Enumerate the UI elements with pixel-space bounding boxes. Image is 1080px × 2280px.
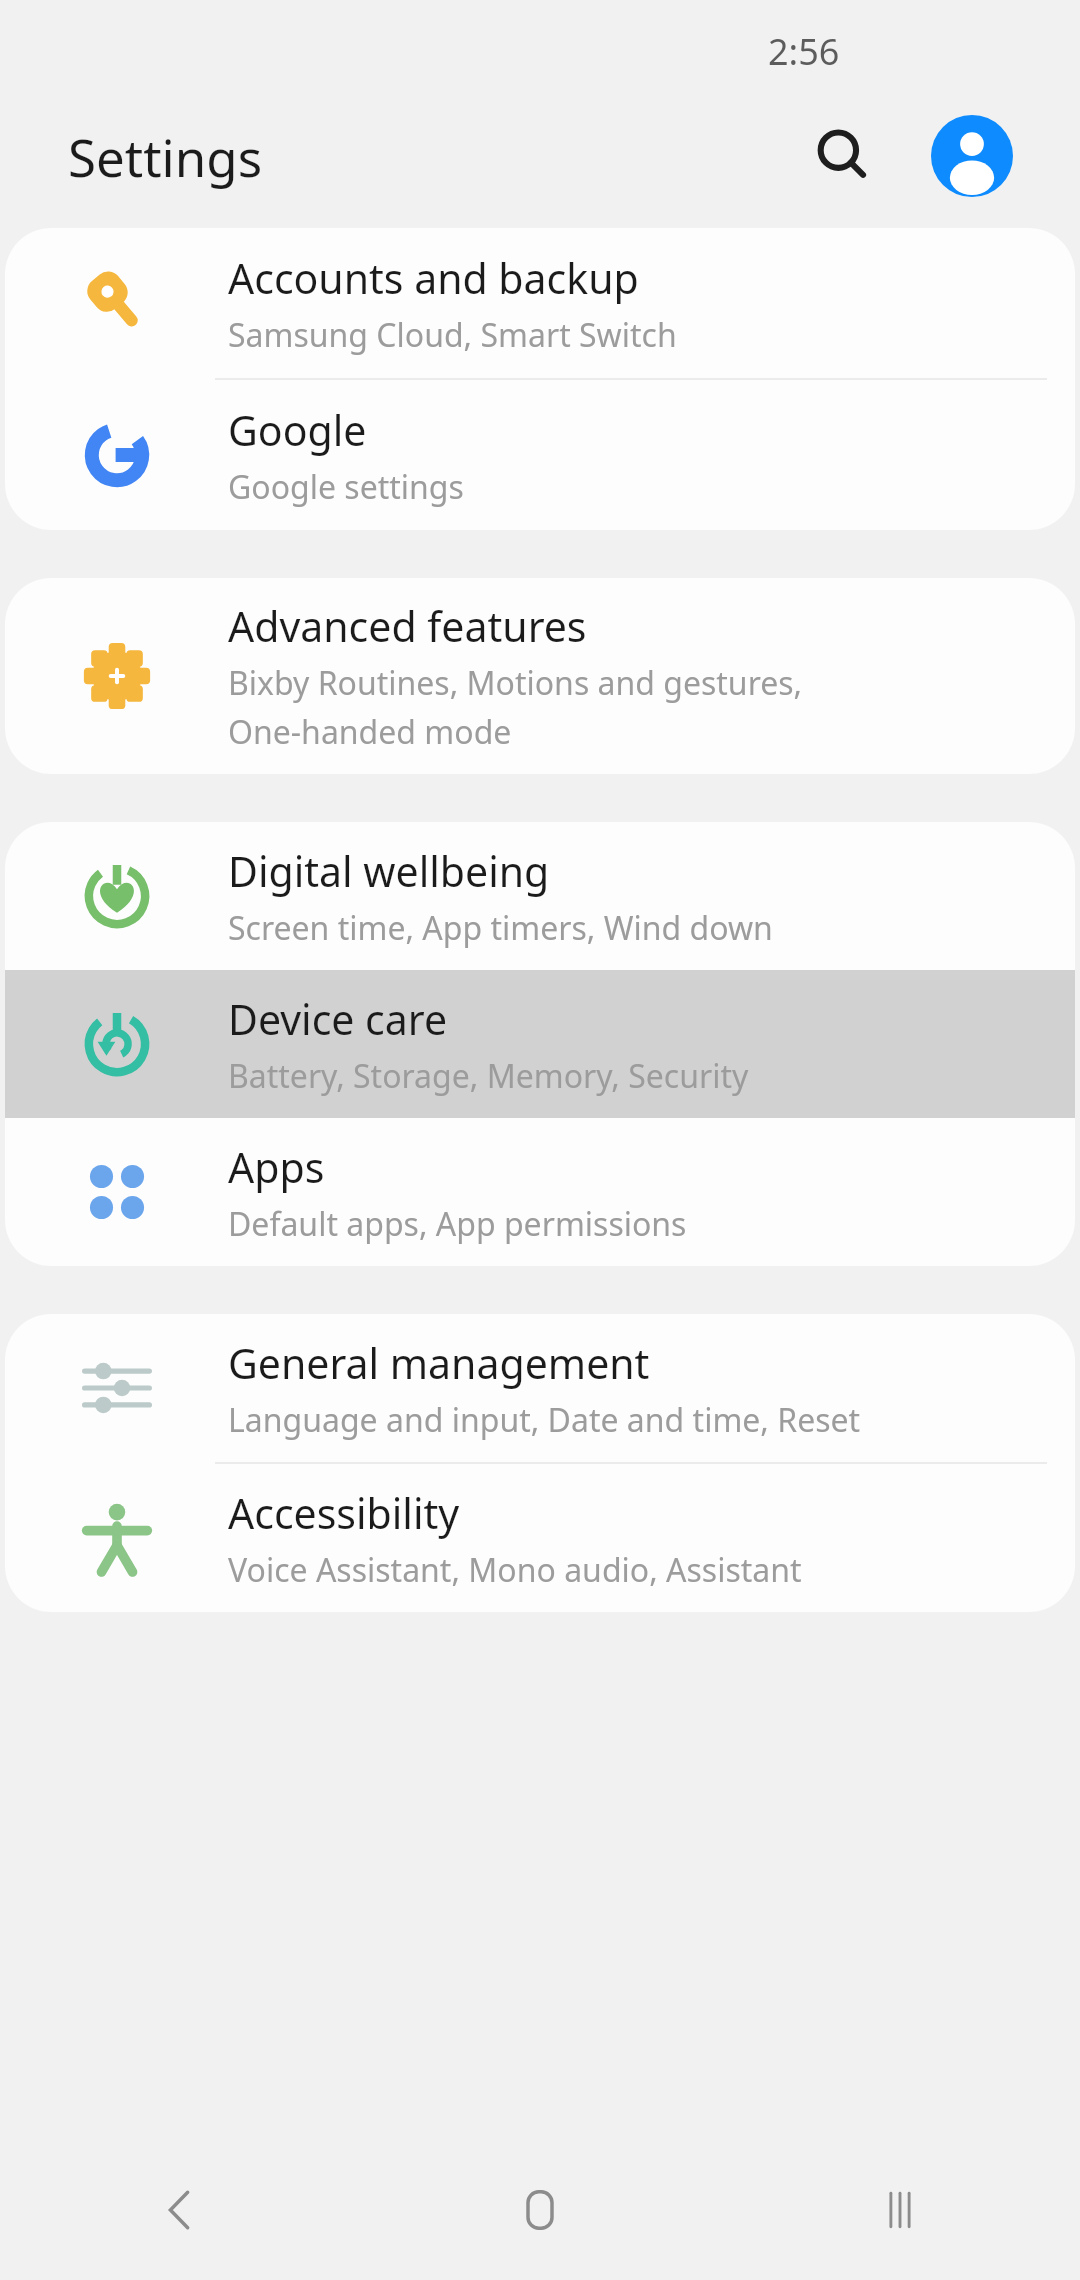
- staticText: Digital wellbeing: [228, 843, 550, 899]
- staticText: Apps: [228, 1139, 325, 1195]
- button[interactable]: Search: [793, 106, 893, 206]
- button[interactable]: Advanced features: [5, 578, 1075, 774]
- staticText: Default apps, App permissions: [228, 1202, 687, 1246]
- staticText: Samsung Cloud, Smart Switch: [228, 313, 677, 357]
- staticText: Voice Assistant, Mono audio, Assistant: [228, 1548, 802, 1592]
- button[interactable]: Google: [5, 380, 1075, 530]
- staticText: Language and input, Date and time, Reset: [228, 1398, 861, 1442]
- button[interactable]: Accessibility: [5, 1464, 1075, 1612]
- staticText: Battery, Storage, Memory, Security: [228, 1054, 749, 1098]
- staticText: Google settings: [228, 465, 464, 509]
- staticText: Advanced features: [228, 598, 587, 654]
- staticText: 2:56: [768, 27, 840, 76]
- button[interactable]: Accounts and backup: [5, 228, 1075, 378]
- staticText: Screen time, App timers, Wind down: [228, 906, 773, 950]
- staticText: Accessibility: [228, 1485, 460, 1541]
- staticText: Device care: [228, 991, 448, 1047]
- button[interactable]: Recents: [720, 2140, 1080, 2280]
- button[interactable]: Digital wellbeing: [5, 822, 1075, 970]
- button[interactable]: General management: [5, 1314, 1075, 1462]
- button[interactable]: Apps: [5, 1118, 1075, 1266]
- button[interactable]: Account: [922, 106, 1022, 206]
- staticText: Google: [228, 402, 367, 458]
- staticText: One-handed mode: [228, 710, 512, 754]
- button[interactable]: Home: [360, 2140, 720, 2280]
- staticText: Bixby Routines, Motions and gestures,: [228, 661, 803, 705]
- button[interactable]: Device care: [5, 970, 1075, 1118]
- button[interactable]: Back: [0, 2140, 360, 2280]
- staticText: General management: [228, 1335, 650, 1391]
- staticText: Settings: [68, 122, 263, 191]
- staticText: Accounts and backup: [228, 250, 639, 306]
